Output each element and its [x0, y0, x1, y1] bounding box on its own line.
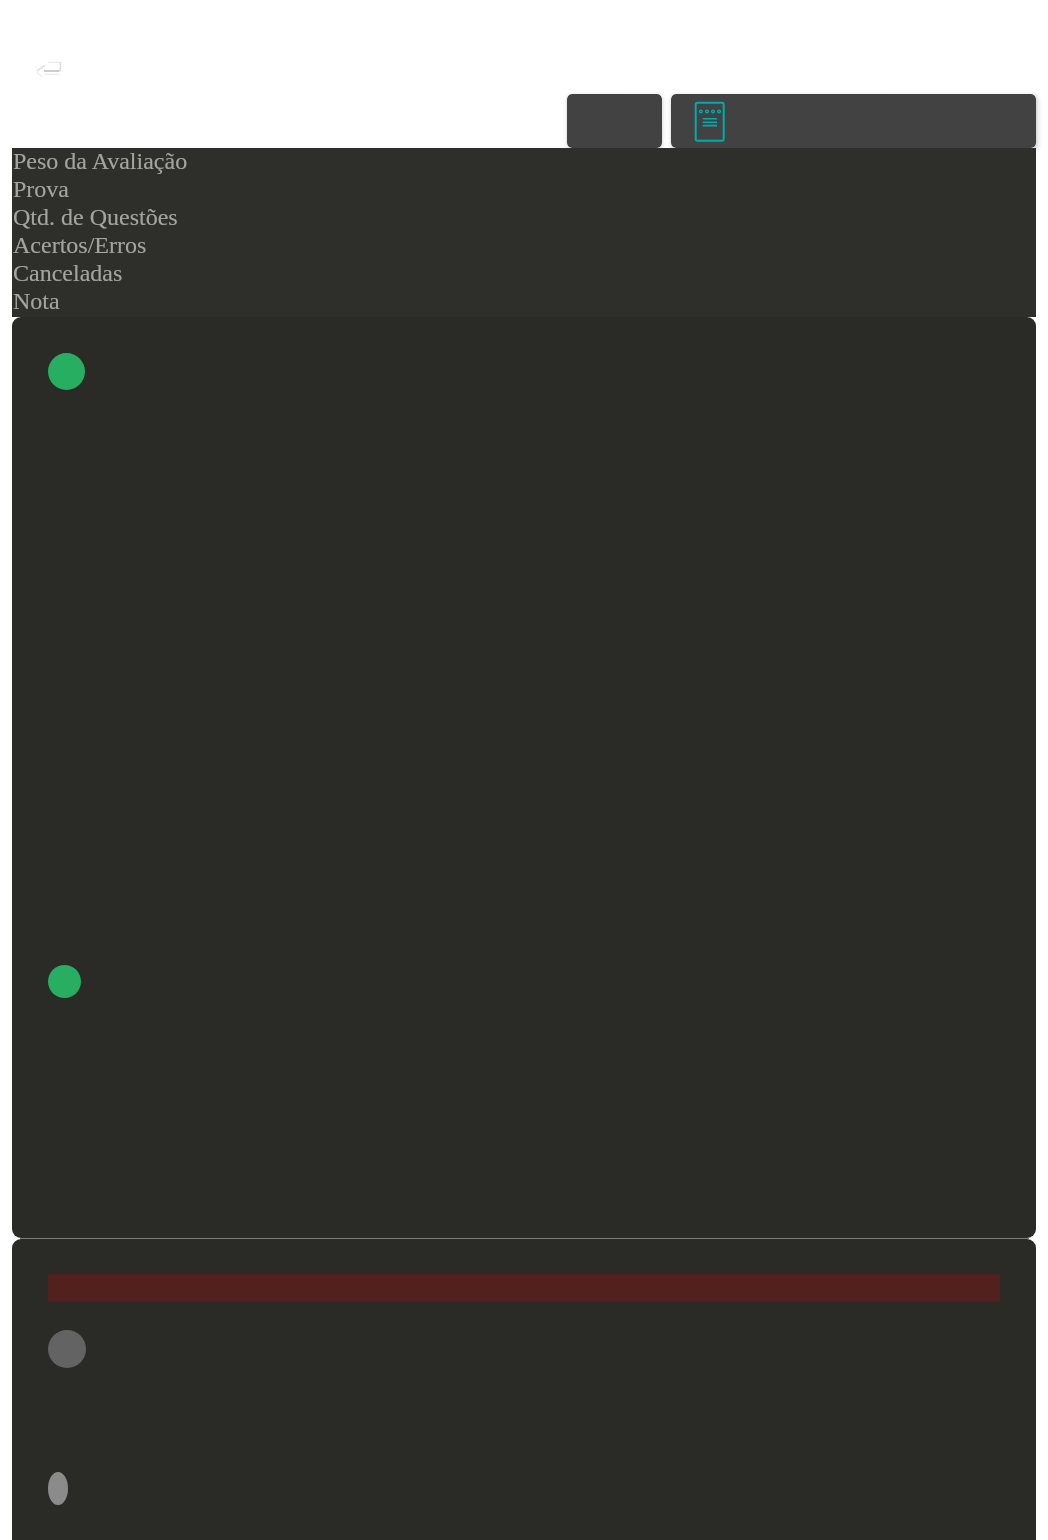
button[interactable]: Filtro [567, 94, 662, 148]
button[interactable] [12, 317, 1036, 1238]
button[interactable] [12, 1239, 1036, 1540]
staticText: Peso da Avaliação Prova Qtd. de Questões… [13, 148, 188, 314]
button[interactable]: Gabarito [671, 94, 1036, 148]
button[interactable]: Voltar [30, 52, 66, 82]
